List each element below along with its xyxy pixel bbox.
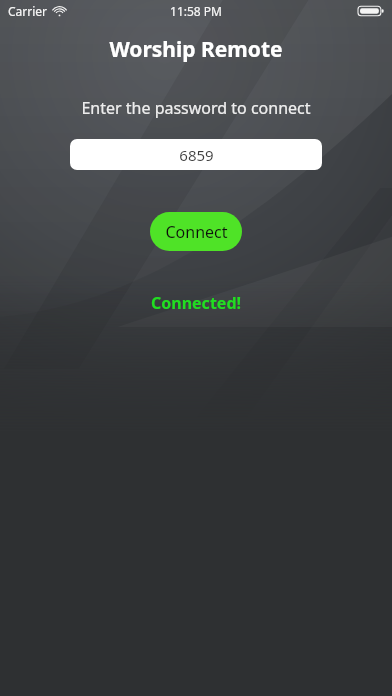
staticText: Enter the password to connect [0,97,392,119]
staticText: Connect [165,221,228,243]
staticText: 11:58 PM [170,3,222,19]
button[interactable]: 6859 [70,139,322,170]
staticText: Carrier [8,3,48,19]
staticText: Connected! [0,292,392,314]
other: Battery full [358,5,384,17]
staticText: 6859 [179,145,214,165]
staticText: Worship Remote [0,35,392,64]
button[interactable]: Connect [150,212,242,251]
other: Wi-Fi signal [53,5,66,18]
